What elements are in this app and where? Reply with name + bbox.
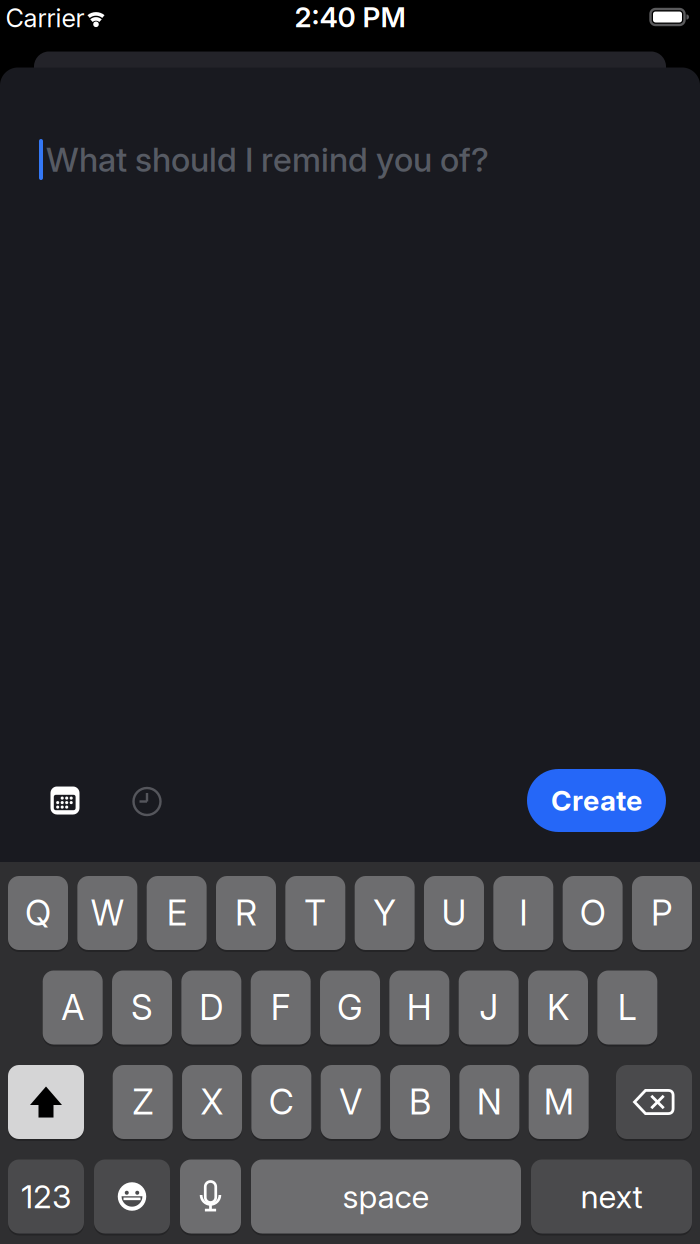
button[interactable]: F xyxy=(251,969,311,1045)
button[interactable]: Numbers xyxy=(8,1158,84,1234)
button[interactable]: D xyxy=(181,969,241,1045)
staticText: 123 xyxy=(21,1178,71,1215)
button[interactable]: Emoji xyxy=(94,1158,170,1234)
staticText: Y xyxy=(373,893,396,933)
staticText: space xyxy=(342,1178,429,1215)
staticText: B xyxy=(409,1082,431,1122)
staticText: D xyxy=(199,987,223,1028)
button[interactable]: T xyxy=(285,875,345,951)
button[interactable]: N xyxy=(459,1064,519,1140)
button[interactable]: A xyxy=(43,969,103,1045)
button[interactable]: B xyxy=(390,1064,450,1140)
button[interactable]: O xyxy=(563,875,623,951)
staticText: V xyxy=(339,1082,362,1122)
staticText: R xyxy=(235,893,257,933)
staticText: A xyxy=(61,987,84,1028)
staticText: T xyxy=(304,893,326,933)
button[interactable]: W xyxy=(77,875,137,951)
staticText: C xyxy=(269,1082,294,1122)
staticText: N xyxy=(477,1082,502,1122)
staticText: F xyxy=(271,987,291,1028)
button[interactable]: C xyxy=(251,1064,311,1140)
button[interactable]: Y xyxy=(355,875,415,951)
staticText: S xyxy=(131,987,153,1028)
staticText: Z xyxy=(132,1082,153,1122)
button[interactable]: M xyxy=(529,1064,589,1140)
button[interactable]: space xyxy=(251,1158,521,1234)
button[interactable]: I xyxy=(493,875,553,951)
button[interactable]: Shift xyxy=(8,1064,84,1140)
button[interactable]: J xyxy=(459,969,519,1045)
button[interactable]: next xyxy=(531,1158,692,1234)
staticText: next xyxy=(580,1178,642,1215)
staticText: L xyxy=(618,987,637,1028)
staticText: What should I remind you of? xyxy=(46,140,489,179)
staticText: G xyxy=(337,987,363,1028)
staticText: 2:40 PM xyxy=(294,0,405,33)
staticText: Create xyxy=(551,784,642,817)
button[interactable]: P xyxy=(632,875,692,951)
staticText: Carrier xyxy=(5,3,84,33)
button[interactable]: L xyxy=(597,969,657,1045)
staticText: I xyxy=(519,893,527,933)
staticText: X xyxy=(200,1082,223,1122)
button[interactable]: X xyxy=(182,1064,242,1140)
button[interactable]: E xyxy=(147,875,207,951)
button[interactable]: Z xyxy=(113,1064,173,1140)
button[interactable]: Q xyxy=(8,875,68,951)
button[interactable]: Dictate xyxy=(180,1158,241,1234)
staticText: U xyxy=(441,893,466,933)
button[interactable]: S xyxy=(112,969,172,1045)
button[interactable]: H xyxy=(389,969,449,1045)
button[interactable]: K xyxy=(528,969,588,1045)
button[interactable]: G xyxy=(320,969,380,1045)
staticText: O xyxy=(580,893,606,933)
button[interactable]: Delete xyxy=(616,1064,692,1140)
staticText: M xyxy=(544,1082,574,1122)
staticText: W xyxy=(91,893,124,933)
button[interactable]: Create xyxy=(527,769,666,832)
button[interactable]: Pick date xyxy=(50,786,79,814)
button[interactable]: R xyxy=(216,875,276,951)
staticText: Q xyxy=(25,893,51,933)
button[interactable]: Pick time xyxy=(132,786,162,816)
staticText: K xyxy=(547,987,569,1028)
staticText: H xyxy=(407,987,432,1028)
staticText: E xyxy=(167,893,187,933)
button[interactable]: V xyxy=(321,1064,381,1140)
staticText: P xyxy=(651,893,673,933)
button[interactable]: U xyxy=(424,875,484,951)
staticText: J xyxy=(479,987,498,1028)
